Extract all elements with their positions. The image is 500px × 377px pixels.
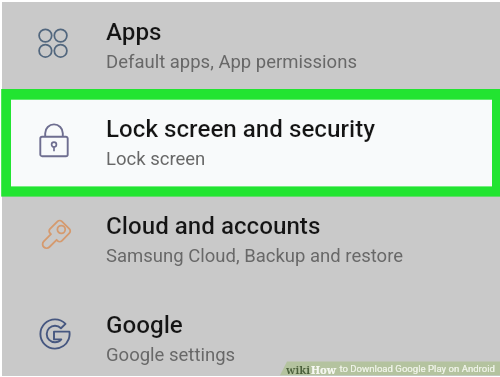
button[interactable] — [0, 289, 500, 377]
staticText: Google — [106, 311, 183, 339]
staticText: Lock screen and security — [106, 115, 376, 143]
button[interactable] — [0, 0, 500, 89]
other: Google — [30, 309, 80, 359]
staticText: Google settings — [106, 344, 236, 366]
staticText: Lock screen — [106, 148, 206, 170]
other: Apps — [31, 22, 75, 66]
staticText: Apps — [106, 18, 162, 46]
staticText: How — [311, 362, 337, 375]
other: Lock screen and security — [24, 112, 74, 162]
staticText: wiki — [286, 362, 311, 375]
button[interactable] — [0, 99, 500, 187]
button[interactable] — [0, 197, 500, 289]
staticText: Samsung Cloud, Backup and restore — [106, 245, 404, 267]
staticText: Cloud and accounts — [106, 212, 321, 240]
staticText: Default apps, App permissions — [106, 51, 357, 73]
other: Cloud and accounts — [28, 209, 78, 259]
staticText: to Download Google Play on Android — [337, 363, 495, 374]
